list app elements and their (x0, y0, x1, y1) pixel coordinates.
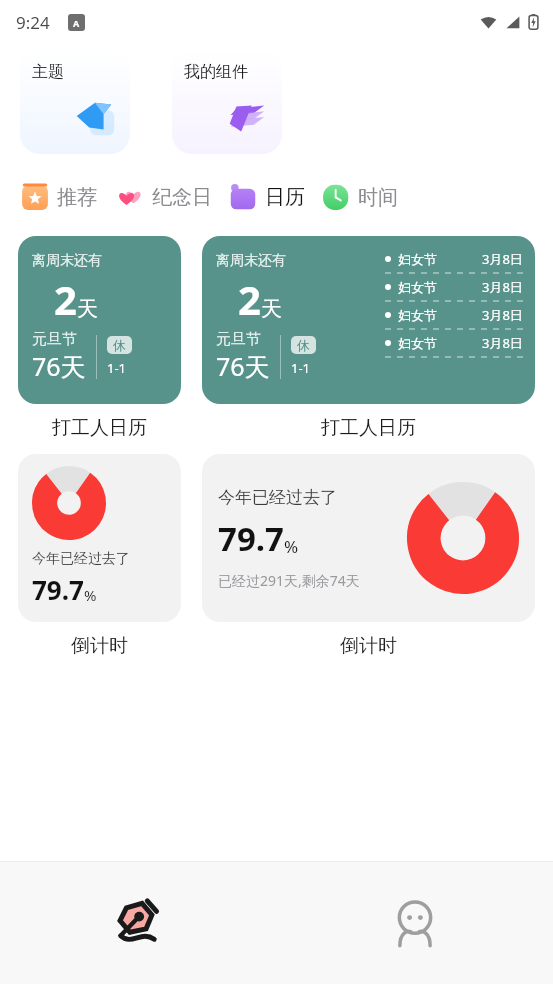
staticText: 3月8日 (482, 334, 523, 352)
button[interactable]: Create (0, 862, 276, 984)
staticText: 日历 (265, 185, 305, 210)
staticText: 休 (113, 337, 126, 353)
button[interactable]: 推荐 (18, 176, 97, 218)
button[interactable]: 今年已经过去了 (202, 454, 535, 622)
button[interactable]: 今年已经过去了 (18, 454, 181, 622)
staticText: 主题 (32, 62, 64, 82)
staticText: 3月8日 (482, 306, 523, 324)
staticText: 离周末还有 (216, 252, 286, 270)
button[interactable]: 离周末还有 (202, 236, 535, 404)
staticText: 今年已经过去了 (32, 550, 130, 568)
staticText: % (284, 535, 299, 558)
staticText: 妇女节 (398, 279, 437, 295)
staticText: 倒计时 (340, 634, 397, 658)
button[interactable]: 主题 (20, 50, 130, 154)
staticText: 妇女节 (398, 335, 437, 351)
staticText: 9:24 (16, 11, 50, 34)
staticText: 1-1 (291, 359, 311, 377)
staticText: 天 (77, 296, 98, 322)
staticText: 已经过291天,剩余74天 (218, 571, 360, 590)
staticText: 3月8日 (482, 250, 523, 268)
staticText: 79.7 (218, 516, 284, 561)
staticText: 妇女节 (398, 307, 437, 323)
staticText: 76天 (32, 349, 86, 383)
button[interactable]: 日历 (226, 176, 305, 218)
staticText: 时间 (358, 185, 398, 210)
staticText: 2 (238, 272, 261, 326)
staticText: A (73, 17, 80, 29)
staticText: 3月8日 (482, 278, 523, 296)
staticText: 推荐 (57, 185, 97, 210)
staticText: 79.7 (32, 572, 84, 607)
staticText: % (84, 585, 97, 605)
staticText: 天 (261, 296, 282, 322)
staticText: 妇女节 (398, 251, 437, 267)
staticText: 1-1 (107, 359, 127, 377)
staticText: 倒计时 (71, 634, 128, 658)
staticText: 打工人日历 (321, 416, 416, 440)
staticText: 76天 (216, 349, 270, 383)
button[interactable]: 离周末还有 (18, 236, 181, 404)
staticText: 纪念日 (152, 185, 212, 210)
staticText: 2 (54, 272, 77, 326)
button[interactable]: 我的组件 (172, 50, 282, 154)
button[interactable]: 时间 (319, 176, 398, 218)
staticText: 离周末还有 (32, 252, 102, 270)
staticText: 休 (297, 337, 310, 353)
staticText: 元旦节 (216, 330, 261, 349)
staticText: 今年已经过去了 (218, 487, 337, 508)
staticText: 我的组件 (184, 62, 248, 82)
button[interactable]: 纪念日 (113, 176, 212, 218)
staticText: 元旦节 (32, 330, 77, 349)
staticText: 打工人日历 (52, 416, 147, 440)
button[interactable]: Profile (276, 862, 553, 984)
